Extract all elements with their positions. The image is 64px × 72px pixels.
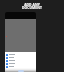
button[interactable]	[5, 65, 36, 68]
button[interactable]	[5, 53, 36, 56]
button[interactable]	[5, 56, 36, 59]
button[interactable]	[5, 59, 36, 62]
button[interactable]	[5, 62, 36, 65]
staticText: ADD ANY DOCUMENT	[22, 2, 42, 10]
